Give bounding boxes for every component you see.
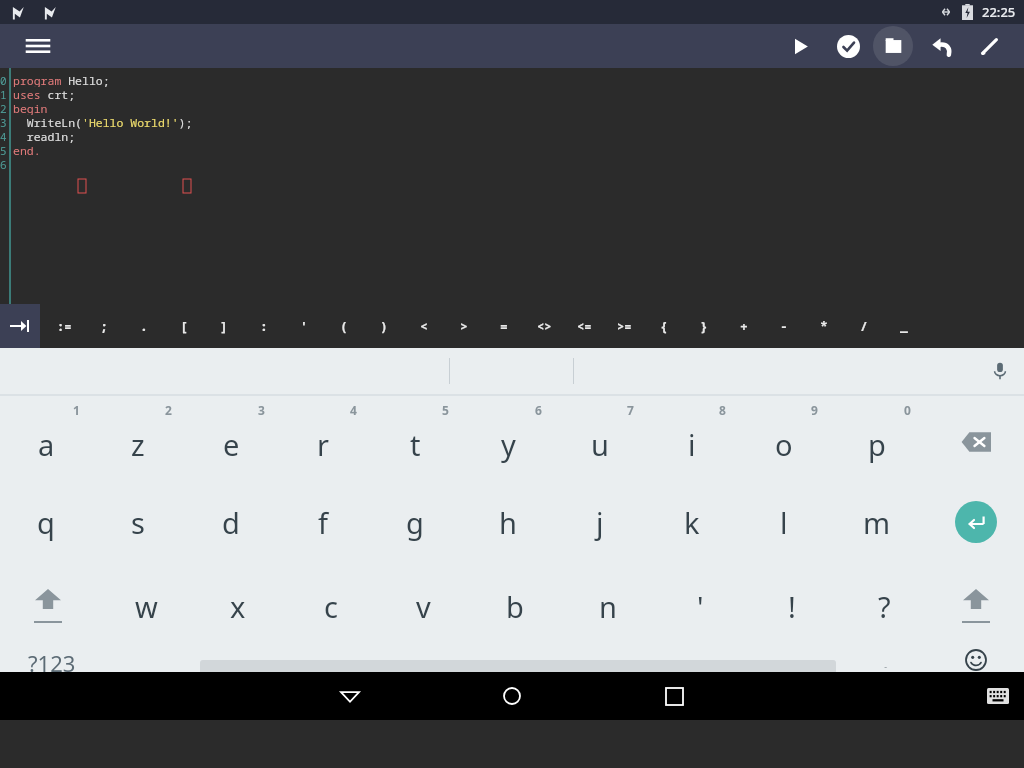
- button[interactable]: ': [654, 564, 746, 648]
- staticText: v: [416, 587, 431, 626]
- staticText: .: [882, 644, 890, 668]
- button[interactable]: m: [831, 480, 923, 564]
- staticText: 2: [0, 101, 9, 115]
- button[interactable]: Enter: [940, 480, 1012, 564]
- button[interactable]: >: [444, 304, 484, 348]
- button[interactable]: r: [277, 396, 369, 480]
- button[interactable]: ;: [84, 304, 124, 348]
- button[interactable]: Edit: [969, 26, 1009, 66]
- staticText: y: [501, 425, 516, 464]
- button[interactable]: Voice input: [980, 348, 1020, 394]
- button[interactable]: z: [92, 396, 184, 480]
- button[interactable]: g: [369, 480, 461, 564]
- staticText: _: [900, 317, 908, 335]
- button[interactable]: <=: [564, 304, 604, 348]
- button[interactable]: u: [554, 396, 646, 480]
- button[interactable]: Backspace: [940, 396, 1012, 480]
- button[interactable]: Shift: [0, 564, 96, 648]
- staticText: q: [37, 503, 55, 542]
- button[interactable]: Undo: [921, 26, 961, 66]
- button[interactable]: Shift: [940, 564, 1012, 648]
- staticText: program Hello;: [13, 73, 110, 87]
- button[interactable]: Menu: [16, 24, 60, 68]
- button[interactable]: k: [646, 480, 738, 564]
- staticText: s: [131, 503, 145, 542]
- staticText: c: [324, 587, 338, 626]
- button[interactable]: v: [377, 564, 469, 648]
- button[interactable]: _: [884, 304, 924, 348]
- staticText: ,: [146, 652, 154, 676]
- button[interactable]: c: [285, 564, 377, 648]
- staticText: <>: [537, 318, 552, 334]
- staticText: 0: [904, 402, 911, 418]
- button[interactable]: Back: [326, 672, 374, 720]
- button[interactable]: :=: [44, 304, 84, 348]
- button[interactable]: y: [462, 396, 554, 480]
- staticText: 8: [719, 402, 726, 418]
- staticText: 0: [0, 73, 9, 87]
- staticText: k: [684, 503, 700, 542]
- button[interactable]: j: [554, 480, 646, 564]
- button[interactable]: Run: [780, 26, 820, 66]
- button[interactable]: e: [185, 396, 277, 480]
- button[interactable]: x: [192, 564, 284, 648]
- staticText: {: [660, 317, 668, 335]
- button[interactable]: d: [185, 480, 277, 564]
- button[interactable]: t: [369, 396, 461, 480]
- button[interactable]: l: [738, 480, 830, 564]
- button[interactable]: ': [284, 304, 324, 348]
- button[interactable]: w: [100, 564, 192, 648]
- button[interactable]: f: [277, 480, 369, 564]
- button[interactable]: Fichier: [873, 26, 913, 66]
- staticText: 1: [0, 87, 9, 101]
- button[interactable]: !: [746, 564, 838, 648]
- button[interactable]: i: [646, 396, 738, 480]
- button[interactable]: :: [244, 304, 284, 348]
- button[interactable]: (: [324, 304, 364, 348]
- button[interactable]: s: [92, 480, 184, 564]
- button[interactable]: /: [844, 304, 884, 348]
- button[interactable]: Hide keyboard: [974, 672, 1022, 720]
- staticText: +: [740, 317, 748, 335]
- button[interactable]: n: [562, 564, 654, 648]
- button[interactable]: b: [469, 564, 561, 648]
- staticText: ?: [878, 587, 891, 626]
- button[interactable]: Tab: [0, 304, 40, 348]
- button[interactable]: >=: [604, 304, 644, 348]
- staticText: }: [700, 317, 708, 335]
- staticText: =: [500, 317, 508, 335]
- button[interactable]: o: [738, 396, 830, 480]
- staticText: readln;: [13, 129, 76, 143]
- button[interactable]: <: [404, 304, 444, 348]
- button[interactable]: ): [364, 304, 404, 348]
- button[interactable]: {: [644, 304, 684, 348]
- button[interactable]: ?123: [0, 648, 104, 672]
- button[interactable]: ]: [204, 304, 244, 348]
- staticText: ': [697, 587, 704, 626]
- button[interactable]: q: [0, 480, 92, 564]
- button[interactable]: +: [724, 304, 764, 348]
- button[interactable]: *: [804, 304, 844, 348]
- button[interactable]: <>: [524, 304, 564, 348]
- button[interactable]: }: [684, 304, 724, 348]
- button[interactable]: Home: [488, 672, 536, 720]
- button[interactable]: Space: [200, 660, 836, 684]
- button[interactable]: a: [0, 396, 92, 480]
- staticText: e: [223, 425, 240, 464]
- button[interactable]: Compile: [828, 26, 868, 66]
- staticText: 4: [350, 402, 357, 418]
- button[interactable]: Recents: [650, 672, 698, 720]
- button[interactable]: .: [124, 304, 164, 348]
- staticText: uses crt;: [13, 87, 76, 101]
- button[interactable]: ?: [838, 564, 930, 648]
- button[interactable]: [: [164, 304, 204, 348]
- button[interactable]: p: [831, 396, 923, 480]
- staticText: f: [318, 503, 328, 542]
- button[interactable]: Emoji: [940, 648, 1012, 672]
- button[interactable]: h: [462, 480, 554, 564]
- button[interactable]: -: [764, 304, 804, 348]
- button[interactable]: =: [484, 304, 524, 348]
